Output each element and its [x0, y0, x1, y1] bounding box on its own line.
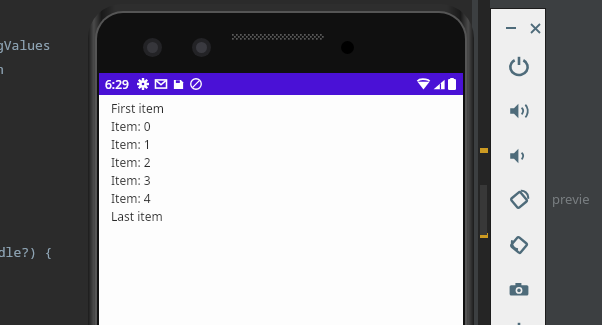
button[interactable]: Volume up	[506, 98, 532, 124]
button[interactable]: Last item	[111, 207, 463, 225]
button[interactable]: Item: 2	[111, 153, 463, 171]
button[interactable]: Item: 3	[111, 171, 463, 189]
button[interactable]: Power	[506, 53, 532, 79]
staticText: Last item	[111, 208, 163, 224]
staticText: Item: 4	[111, 190, 151, 206]
staticText: Item: 1	[111, 136, 151, 152]
button[interactable]: Take screenshot	[506, 277, 532, 303]
button[interactable]: Rotate right	[506, 232, 532, 258]
staticText: Item: 3	[111, 172, 151, 188]
staticText: First item	[111, 100, 164, 116]
button[interactable]: First item	[111, 99, 463, 117]
staticText: Item: 0	[111, 118, 151, 134]
button[interactable]: Volume down	[506, 143, 532, 169]
button[interactable]: Rotate left	[506, 187, 532, 213]
staticText: n	[0, 60, 4, 78]
staticText: ndle?) {	[0, 243, 53, 261]
button[interactable]: More	[506, 319, 532, 325]
staticText: Item: 2	[111, 154, 151, 170]
button[interactable]: Close	[527, 20, 543, 36]
staticText: gValues	[0, 36, 51, 54]
staticText: previe	[552, 190, 590, 208]
button[interactable]: Item: 1	[111, 135, 463, 153]
button[interactable]: Item: 4	[111, 189, 463, 207]
button[interactable]: Minimize	[503, 20, 519, 36]
button[interactable]: Item: 0	[111, 117, 463, 135]
staticText: 6:29	[105, 76, 129, 92]
